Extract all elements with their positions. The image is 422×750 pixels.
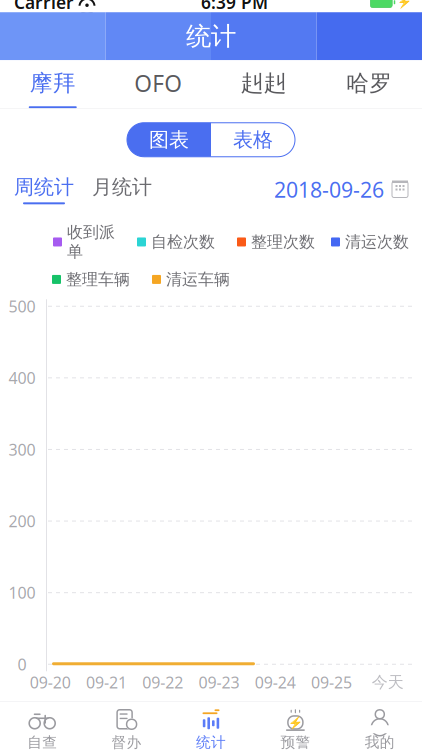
- staticText: 100: [8, 582, 35, 603]
- staticText: 09-24: [255, 672, 296, 693]
- staticText: 今天: [372, 672, 404, 692]
- staticText: 6:39 PM: [201, 0, 268, 14]
- staticText: 400: [8, 367, 35, 388]
- button[interactable]: 督办: [84, 702, 169, 750]
- button[interactable]: ⚡: [253, 702, 338, 750]
- staticText: 清运车辆: [166, 270, 230, 289]
- staticText: 摩拜: [30, 69, 76, 97]
- staticText: 300: [8, 439, 35, 460]
- staticText: 清运次数: [345, 232, 409, 252]
- button[interactable]: OFO: [105, 60, 211, 108]
- staticText: 09-20: [30, 672, 71, 693]
- staticText: 整理车辆: [66, 270, 130, 289]
- staticText: OFO: [134, 68, 182, 98]
- staticText: ⚡: [397, 0, 412, 9]
- button[interactable]: 哈罗: [316, 60, 422, 108]
- button[interactable]: 赳赳: [211, 60, 316, 108]
- button[interactable]: 摩拜: [0, 60, 105, 108]
- staticText: 09-25: [311, 672, 352, 693]
- staticText: 赳赳: [241, 69, 287, 97]
- staticText: 0: [17, 654, 26, 675]
- staticText: 图表: [149, 127, 189, 152]
- staticText: 09-22: [142, 672, 183, 693]
- staticText: 自查: [27, 733, 57, 750]
- button[interactable]: 2018-09-26: [274, 175, 408, 204]
- staticText: 500: [8, 296, 35, 317]
- staticText: 统计: [196, 733, 226, 750]
- staticText: 09-23: [198, 672, 239, 693]
- staticText: 督办: [112, 733, 142, 750]
- staticText: ⚡: [288, 716, 303, 729]
- staticText: 整理次数: [251, 232, 315, 252]
- button[interactable]: 周统计: [14, 175, 74, 204]
- staticText: 表格: [233, 127, 273, 152]
- button[interactable]: 统计: [169, 702, 253, 750]
- staticText: 2018-09-26: [274, 175, 384, 204]
- button[interactable]: 月统计: [92, 175, 152, 204]
- staticText: 预警: [280, 733, 310, 750]
- staticText: 收到派单: [67, 222, 115, 262]
- button[interactable]: 自查: [0, 702, 84, 750]
- staticText: 200: [8, 510, 35, 532]
- staticText: 月统计: [92, 175, 152, 199]
- button[interactable]: 表格: [211, 123, 295, 157]
- staticText: 09-21: [86, 672, 127, 693]
- staticText: Carrier: [14, 0, 74, 14]
- button[interactable]: 图表: [127, 123, 211, 157]
- staticText: 我的: [365, 733, 395, 750]
- staticText: 周统计: [14, 175, 74, 199]
- staticText: 哈罗: [346, 69, 392, 97]
- staticText: 统计: [186, 21, 236, 52]
- button[interactable]: 我的: [338, 702, 422, 750]
- staticText: 自检次数: [151, 232, 215, 252]
